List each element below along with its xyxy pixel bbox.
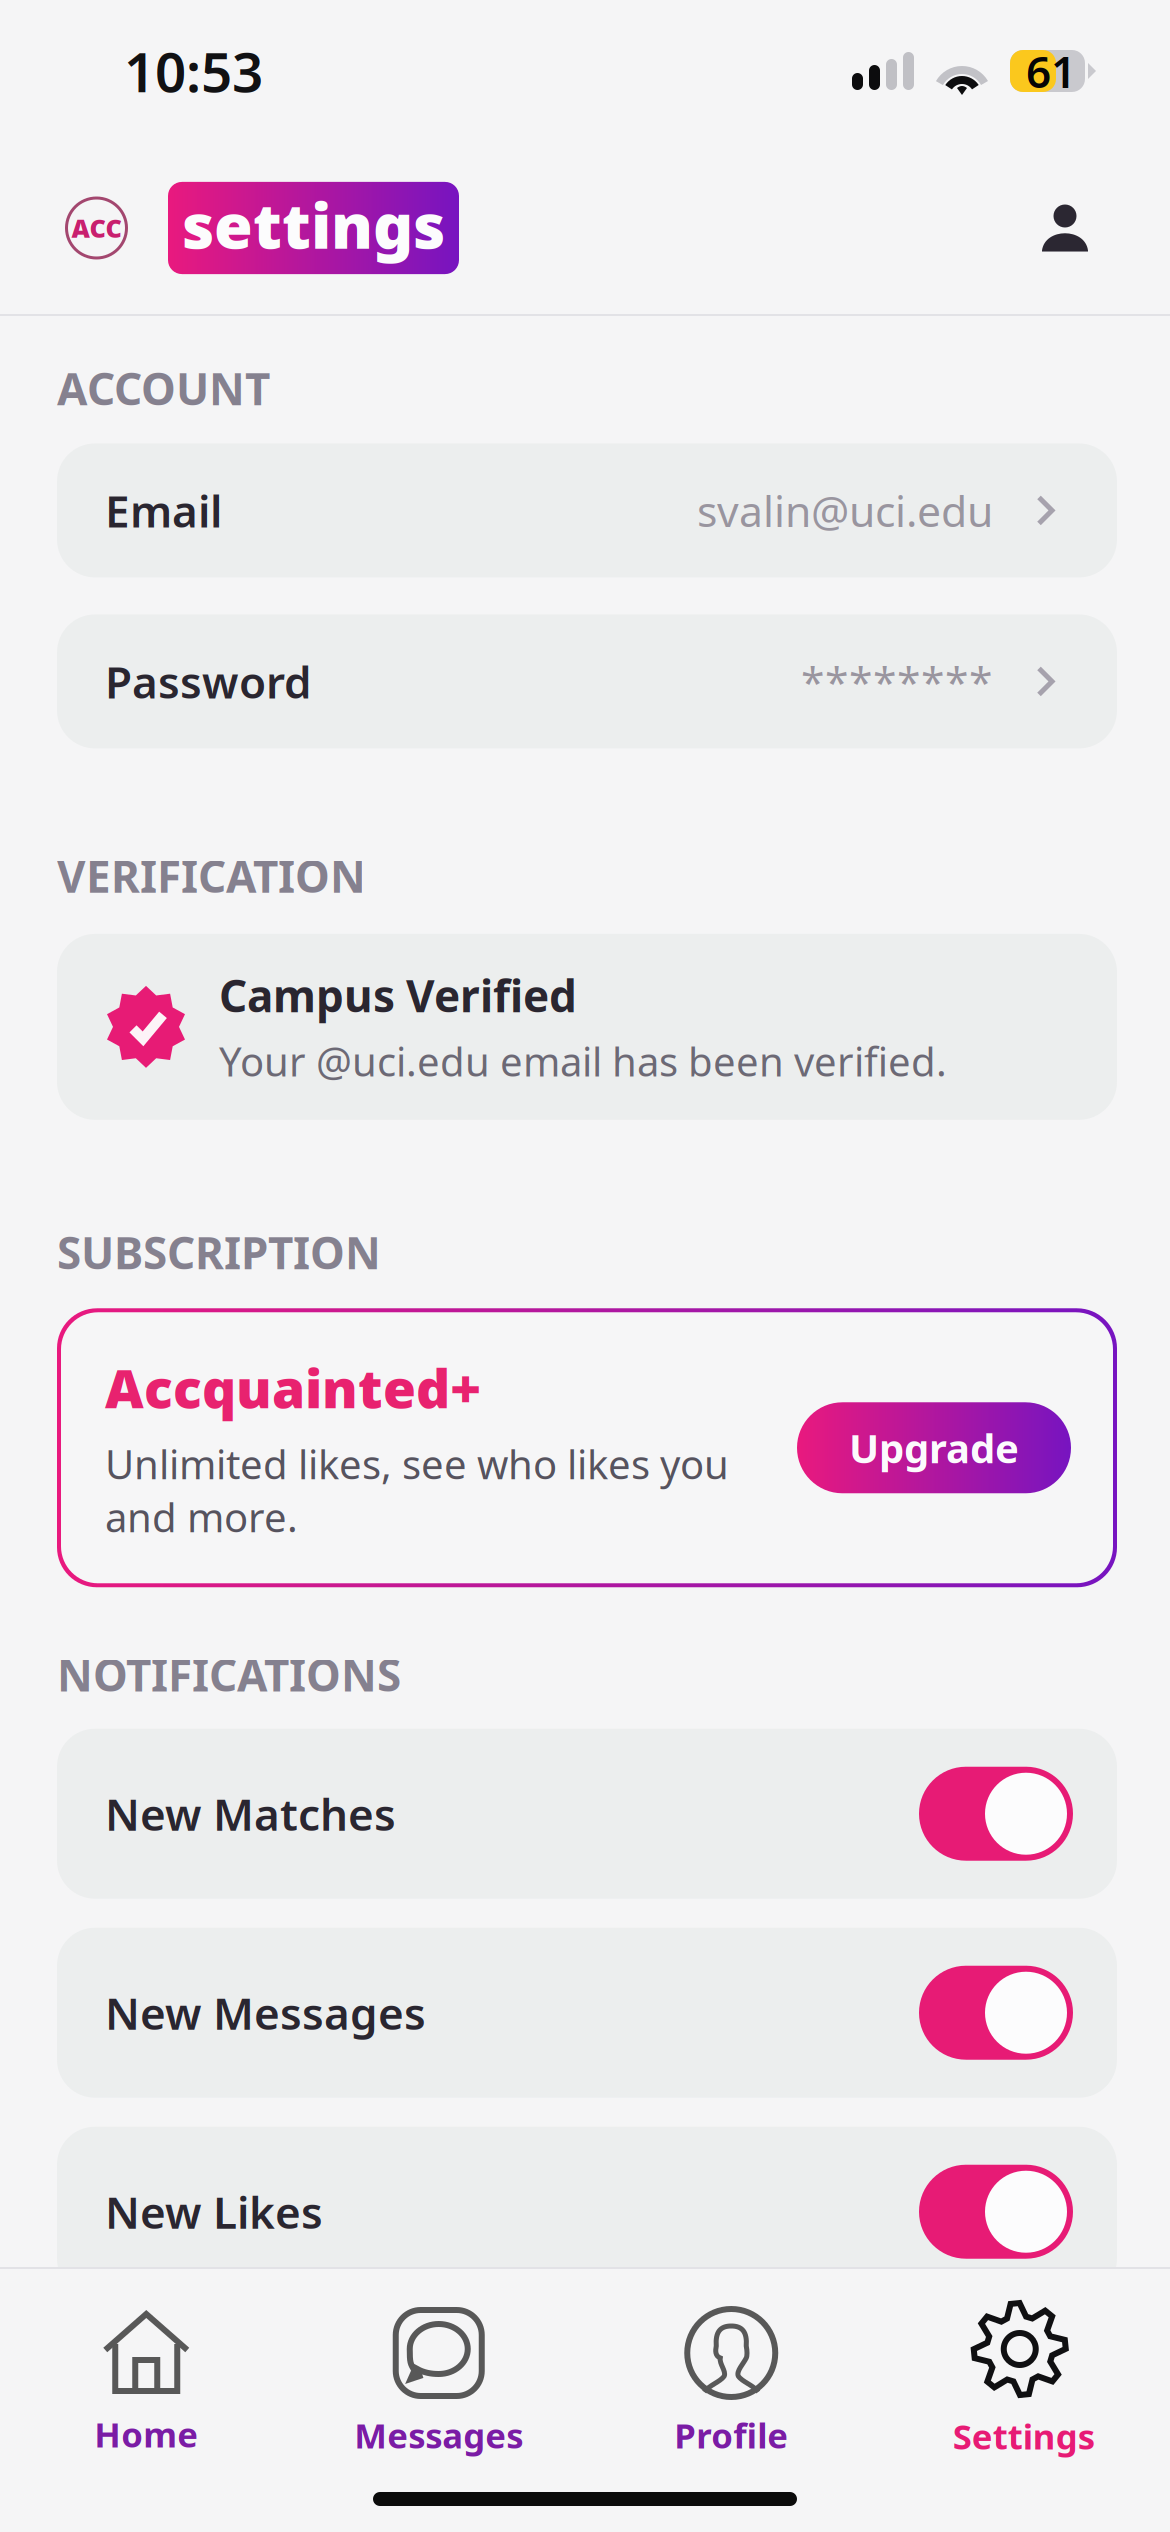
staticText: Your @uci.edu email has been verified. — [219, 1034, 947, 1088]
staticText: Unlimited likes, see who likes you and m… — [105, 1437, 729, 1543]
staticText: Accquainted+ — [105, 1352, 481, 1423]
staticText: Home — [94, 2411, 198, 2457]
button[interactable]: Account — [1042, 204, 1088, 251]
staticText: New Matches — [105, 1784, 396, 1843]
staticText: New Messages — [105, 1983, 426, 2042]
staticText: Profile — [674, 2412, 788, 2458]
button[interactable]: Profile — [585, 2308, 877, 2458]
staticText: ACC — [71, 211, 121, 245]
staticText: ******** — [801, 653, 993, 710]
button[interactable]: Email — [57, 443, 1117, 577]
staticText: ACCOUNT — [57, 359, 270, 417]
staticText: New Likes — [105, 2182, 323, 2241]
button[interactable]: Home — [0, 2309, 292, 2457]
button[interactable]: Accquainted home — [66, 197, 127, 258]
staticText: Messages — [354, 2412, 523, 2458]
staticText: Upgrade — [849, 1421, 1019, 1474]
button[interactable]: New Matches — [57, 1729, 1117, 1899]
staticText: Password — [105, 652, 312, 711]
staticText: Campus Verified — [219, 966, 577, 1024]
staticText: settings — [182, 183, 445, 266]
staticText: Email — [105, 481, 222, 540]
button[interactable]: New Likes — [57, 2127, 1117, 2297]
button[interactable]: Upgrade — [797, 1402, 1071, 1493]
staticText: Settings — [953, 2413, 1095, 2459]
staticText: svalin@uci.edu — [697, 482, 993, 539]
button[interactable]: Settings — [877, 2307, 1170, 2459]
staticText: NOTIFICATIONS — [57, 1645, 401, 1704]
staticText: 10:53 — [124, 35, 263, 107]
staticText: VERIFICATION — [57, 846, 366, 905]
staticText: 61 — [1026, 42, 1076, 100]
button[interactable]: New Messages — [57, 1928, 1117, 2098]
button[interactable]: Messages — [292, 2308, 585, 2458]
staticText: SUBSCRIPTION — [57, 1223, 381, 1281]
button[interactable]: Password — [57, 614, 1117, 748]
